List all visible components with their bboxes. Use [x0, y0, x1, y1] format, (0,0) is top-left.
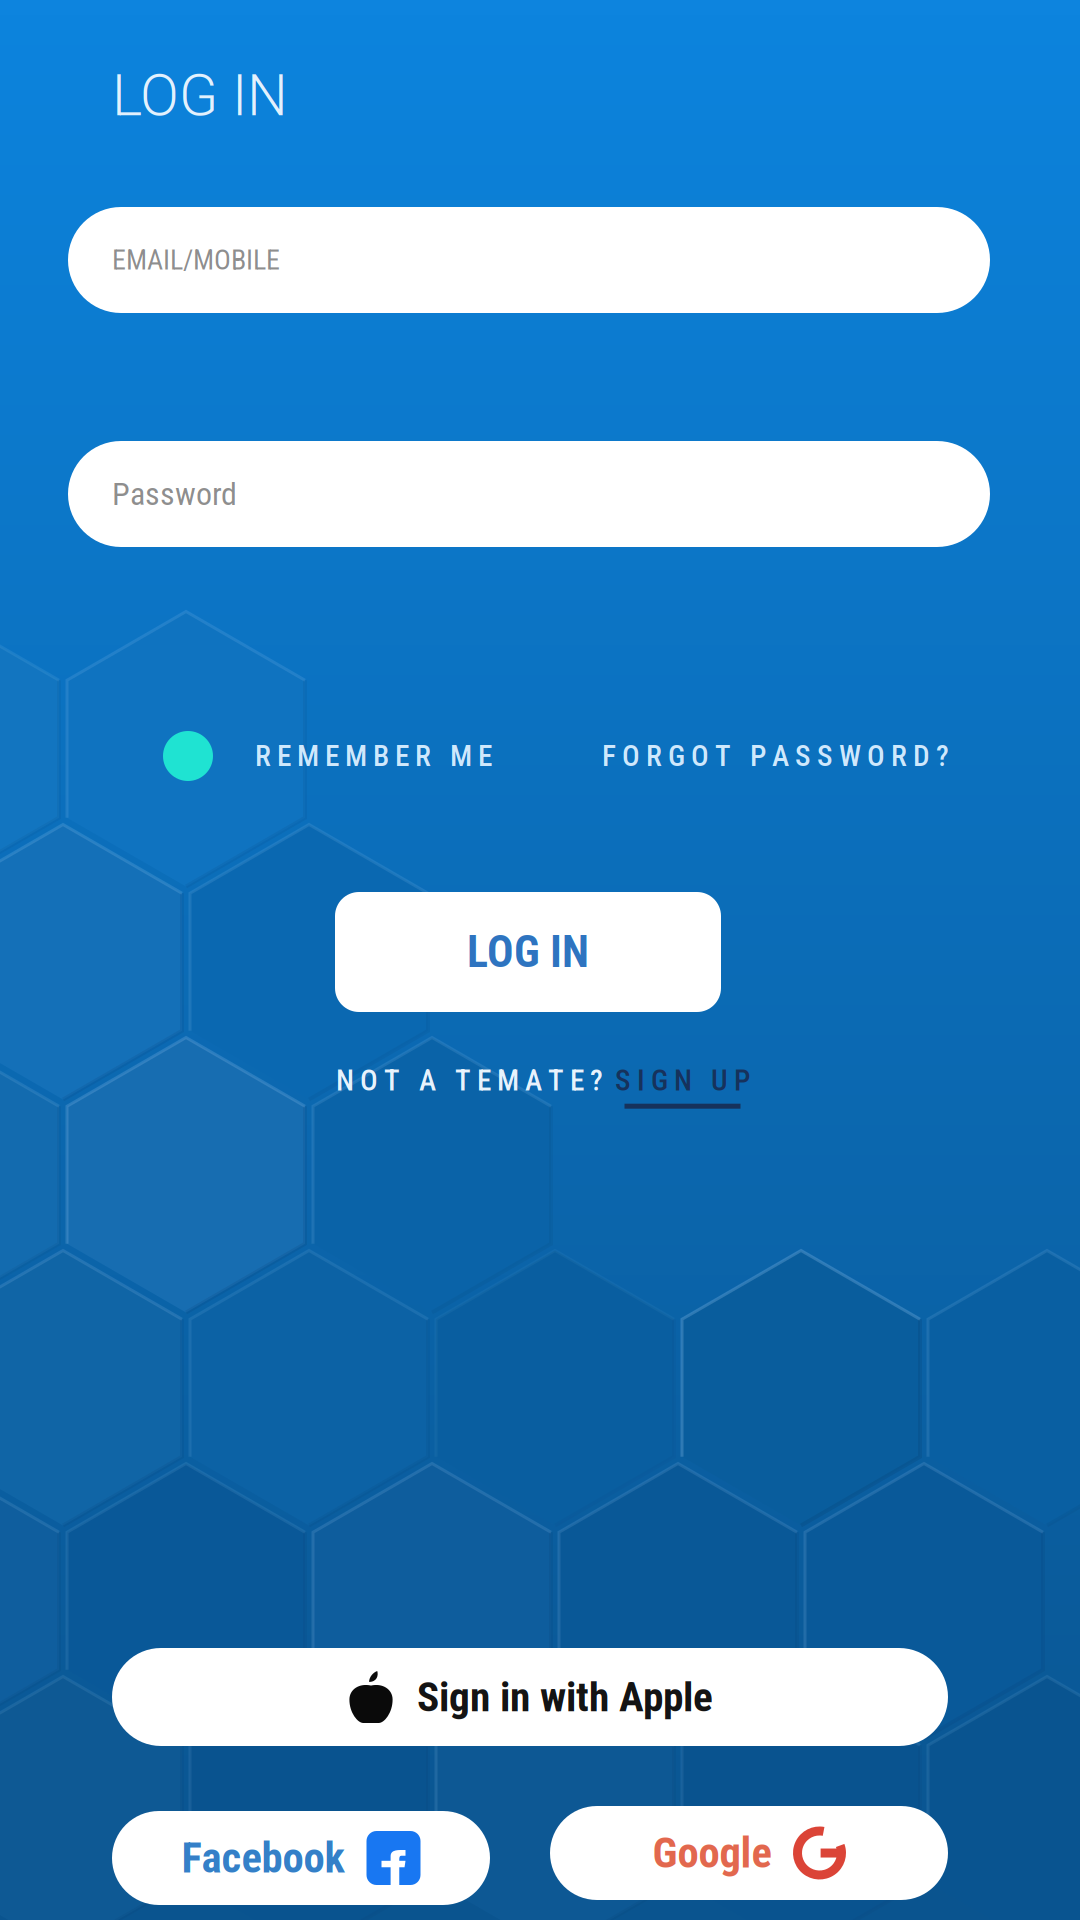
- button[interactable]: F O R G O T P A S S W O R D ?: [602, 730, 1002, 782]
- staticText: R E M E M B E R M E: [255, 739, 492, 773]
- button[interactable]: R E M E M B E R M E: [163, 730, 563, 782]
- staticText: Sign in with Apple: [417, 1673, 713, 1721]
- staticText: Facebook: [181, 1833, 344, 1883]
- staticText: S I G N U P: [615, 1063, 750, 1098]
- button[interactable]: LOG IN: [335, 892, 721, 1012]
- staticText: EMAIL/MOBILE: [112, 244, 280, 276]
- button[interactable]: EMAIL/MOBILE: [68, 207, 990, 313]
- button[interactable]: Google: [550, 1806, 948, 1900]
- staticText: Password: [112, 475, 237, 513]
- staticText: F O R G O T P A S S W O R D ?: [602, 739, 949, 773]
- staticText: Google: [652, 1828, 771, 1878]
- button[interactable]: Password: [68, 441, 990, 547]
- button[interactable]: N O T A T E M A T E ?: [336, 1056, 796, 1116]
- staticText: LOG IN: [112, 62, 288, 129]
- button[interactable]: Facebook: [112, 1811, 490, 1905]
- staticText: N O T A T E M A T E ?: [336, 1063, 603, 1098]
- button[interactable]: Sign in with Apple: [112, 1648, 948, 1746]
- staticText: LOG IN: [467, 926, 589, 978]
